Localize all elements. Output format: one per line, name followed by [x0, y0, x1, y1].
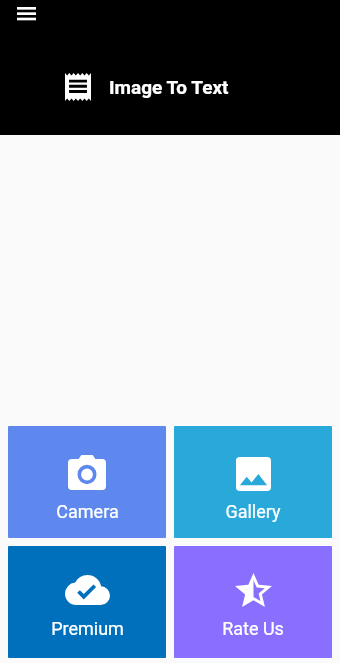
- button[interactable]: Gallery: [174, 426, 332, 538]
- button[interactable]: Open navigation menu: [5, 0, 47, 38]
- button[interactable]: Rate Us: [174, 546, 332, 658]
- staticText: Gallery: [225, 501, 281, 522]
- button[interactable]: Premium: [8, 546, 166, 658]
- button[interactable]: Camera: [8, 426, 166, 538]
- staticText: Camera: [56, 501, 119, 522]
- staticText: Premium: [51, 618, 124, 639]
- staticText: Image To Text: [109, 76, 229, 98]
- staticText: Rate Us: [222, 618, 284, 639]
